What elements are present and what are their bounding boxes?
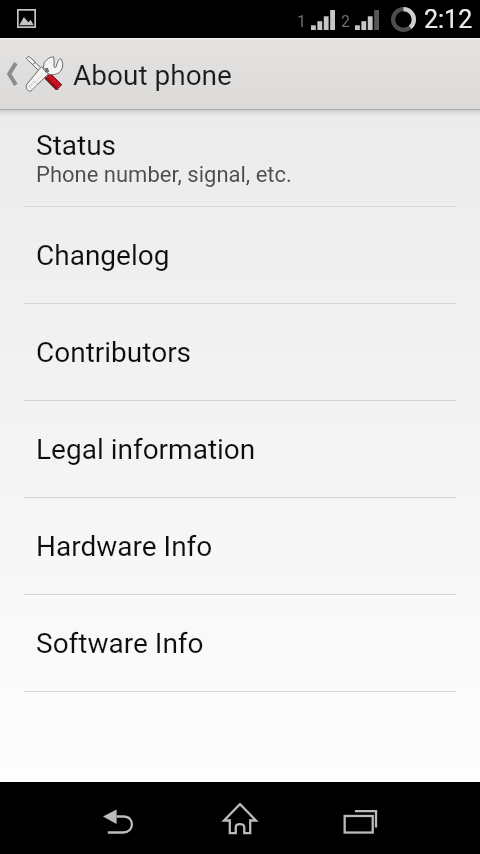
staticText: Contributors	[36, 336, 192, 369]
staticText: 1	[297, 12, 306, 31]
button[interactable]: Recent apps	[300, 782, 420, 854]
button[interactable]: Hardware Info	[0, 498, 480, 595]
button[interactable]: Legal information	[0, 401, 480, 498]
staticText: 2	[341, 12, 350, 31]
button[interactable]: Contributors	[0, 304, 480, 401]
staticText: Software Info	[36, 627, 204, 660]
staticText: Legal information	[36, 433, 256, 466]
staticText: Changelog	[36, 239, 170, 272]
staticText: Phone number, signal, etc.	[36, 162, 292, 188]
other: Back	[5, 60, 21, 88]
staticText: About phone	[73, 59, 232, 92]
button[interactable]: Home	[180, 782, 300, 854]
button[interactable]: Changelog	[0, 207, 480, 304]
staticText: Status	[36, 129, 117, 162]
staticText: 2:12	[424, 5, 473, 34]
button[interactable]: Status	[0, 110, 480, 207]
button[interactable]: Software Info	[0, 595, 480, 692]
button[interactable]: Back	[0, 38, 480, 110]
staticText: Hardware Info	[36, 530, 213, 563]
button[interactable]: Back	[60, 782, 180, 854]
